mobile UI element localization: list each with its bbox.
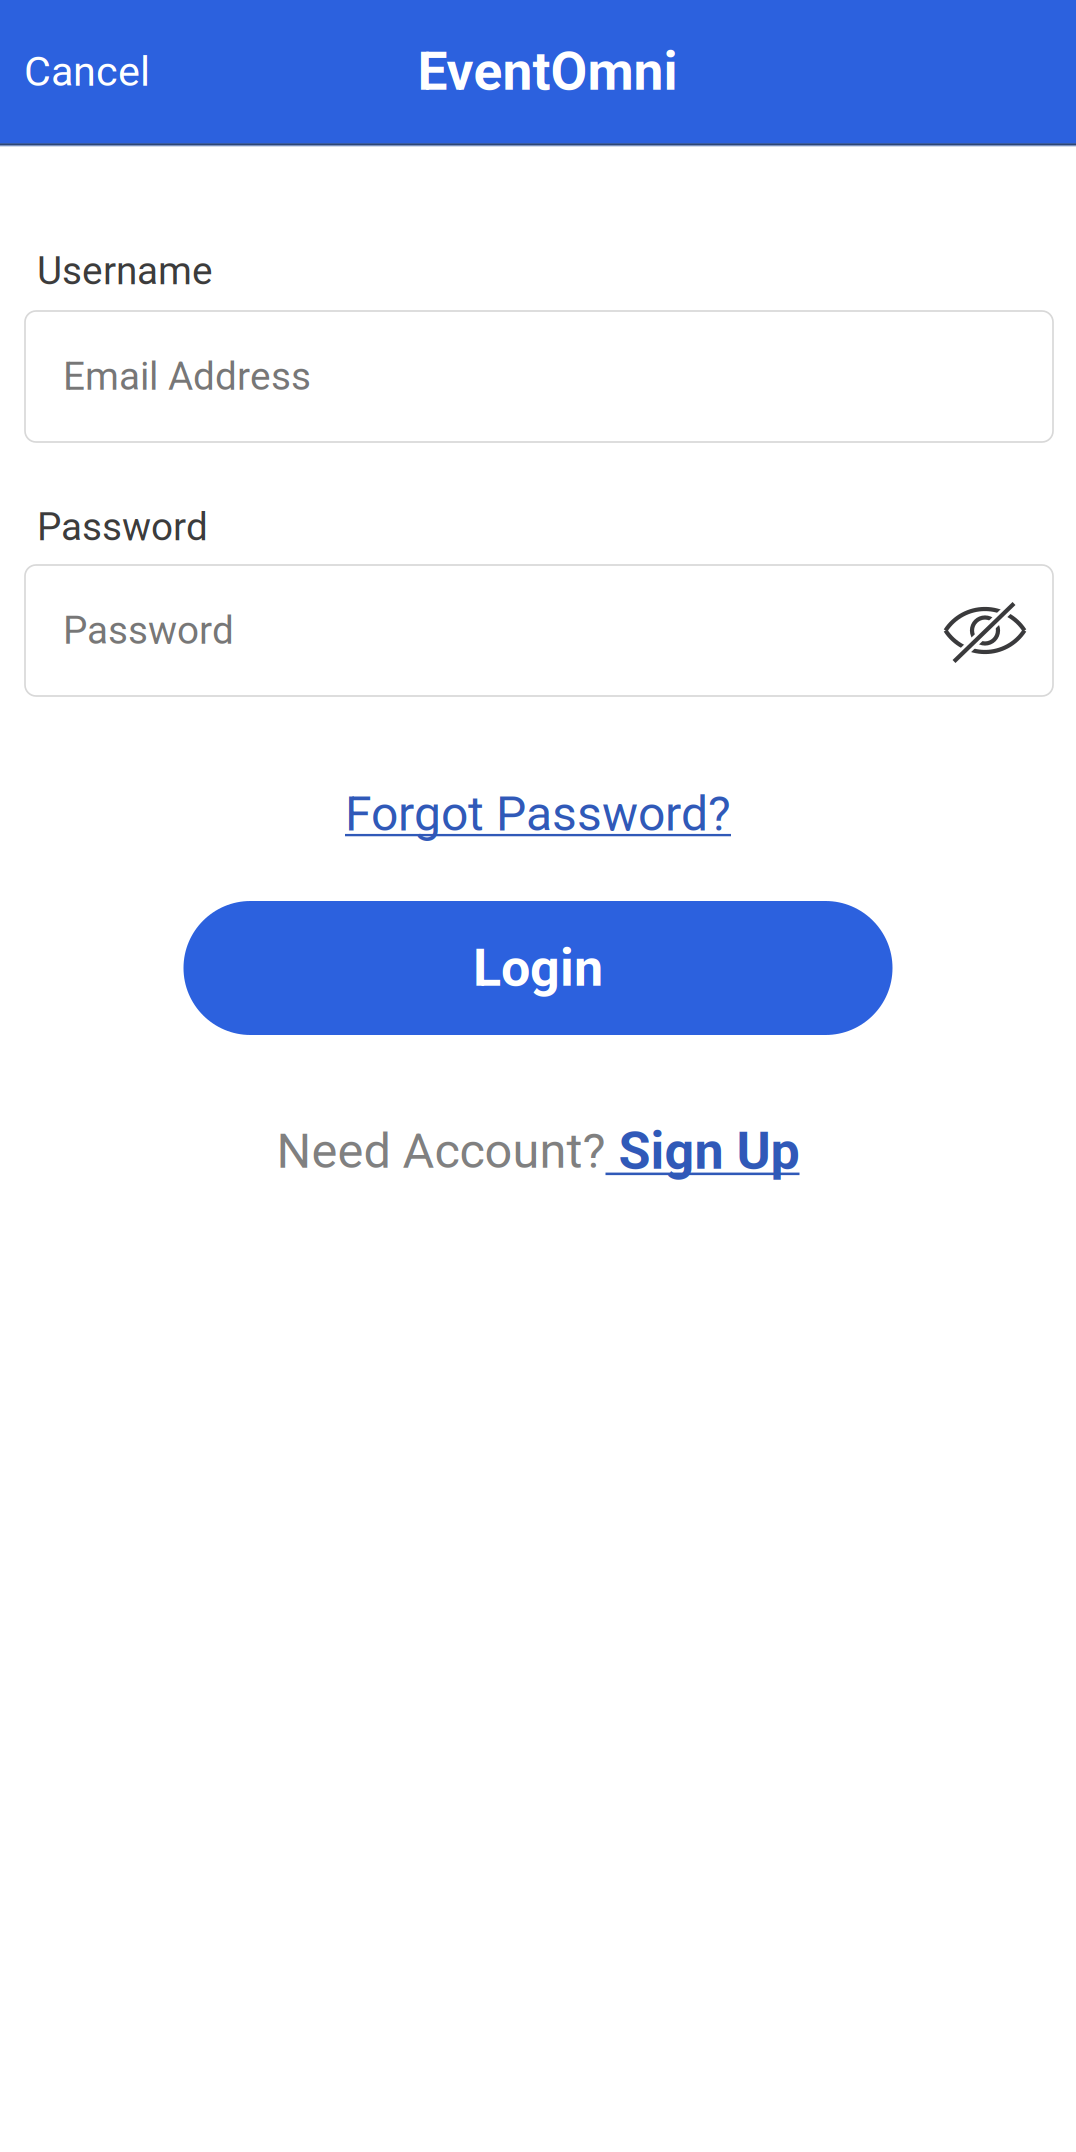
staticText: Password [63, 608, 234, 653]
staticText: Sign Up [605, 1120, 799, 1181]
staticText: Username [37, 248, 213, 294]
staticText: Password [37, 504, 208, 550]
button[interactable]: Sign Up [605, 1120, 799, 1181]
staticText: Need Account? [276, 1122, 605, 1179]
button[interactable]: Show password [941, 595, 1053, 665]
staticText: Forgot Password? [345, 786, 731, 842]
button[interactable]: Login [183, 901, 892, 1035]
staticText: EventOmni [417, 40, 677, 103]
staticText: Email Address [63, 354, 311, 399]
button[interactable]: Cancel [0, 0, 150, 144]
button[interactable]: Forgot Password? [0, 784, 1076, 844]
staticText: Cancel [24, 47, 150, 96]
staticText: Login [473, 937, 603, 998]
